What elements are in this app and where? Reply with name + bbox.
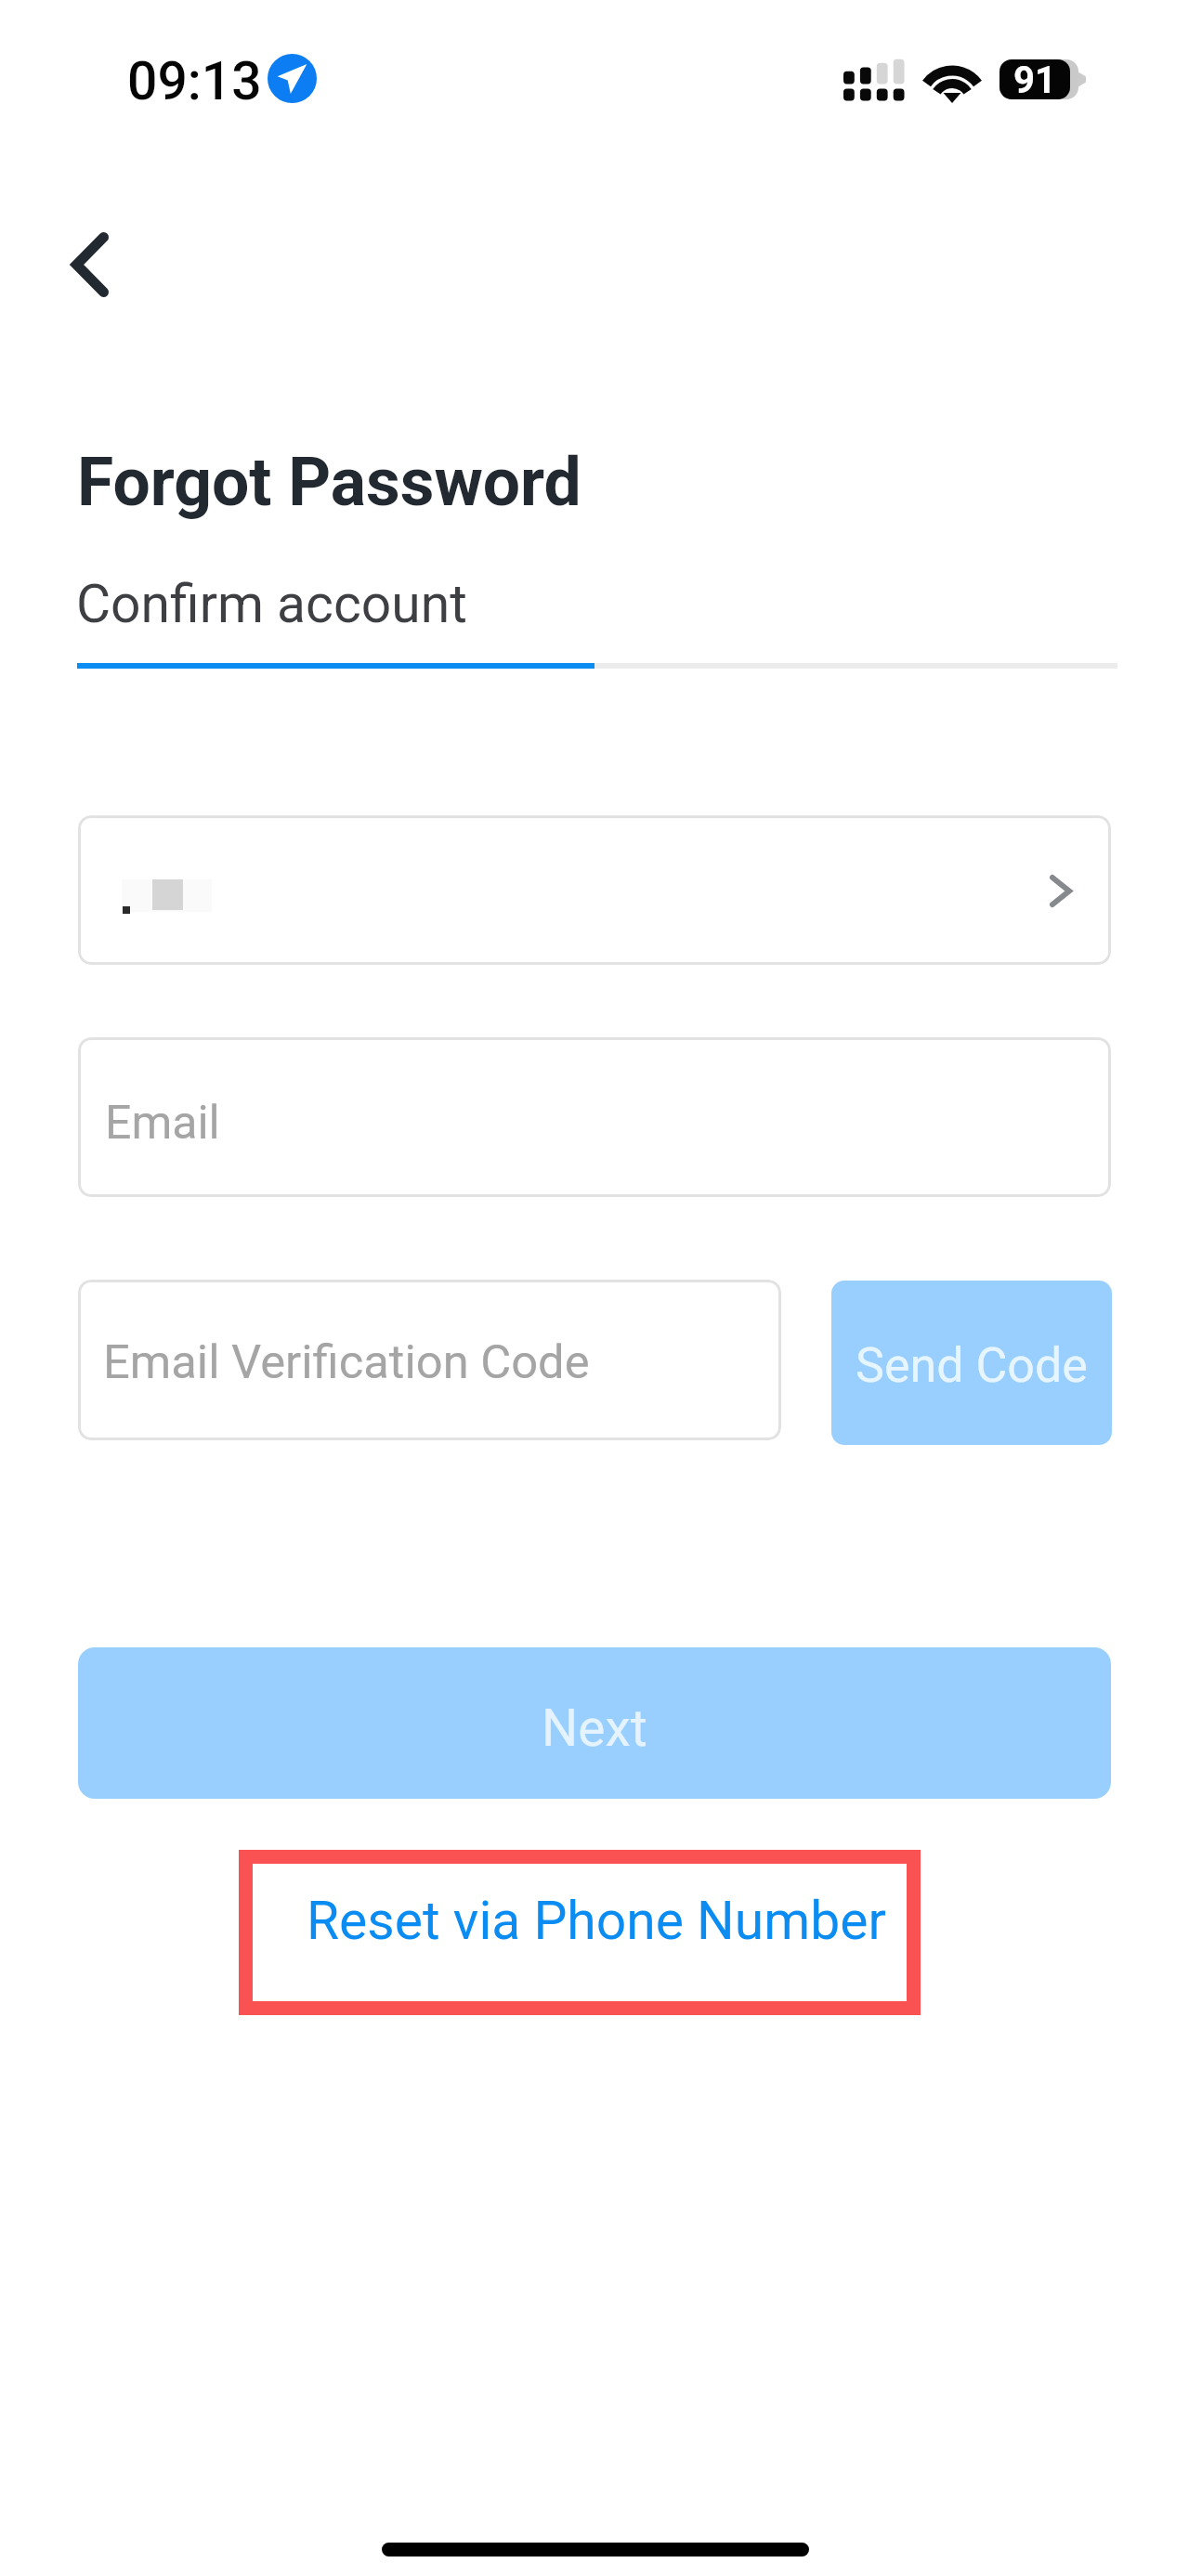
button[interactable]: Select account bbox=[78, 815, 1111, 965]
staticText: Forgot Password bbox=[77, 444, 581, 522]
button[interactable]: Next bbox=[78, 1647, 1111, 1799]
staticText: Reset via Phone Number bbox=[307, 1890, 886, 1952]
button[interactable]: Send Code bbox=[831, 1281, 1112, 1445]
staticText: Next bbox=[542, 1698, 647, 1758]
staticText: Email bbox=[105, 1096, 220, 1151]
button[interactable]: Email bbox=[78, 1037, 1111, 1197]
button[interactable]: Back bbox=[40, 209, 140, 320]
staticText: 91 bbox=[1013, 59, 1056, 98]
staticText: Confirm account bbox=[76, 573, 467, 635]
staticText: 09:13 bbox=[127, 50, 262, 112]
button[interactable]: Email Verification Code bbox=[78, 1280, 781, 1440]
staticText: Email Verification Code bbox=[103, 1334, 590, 1389]
staticText: Send Code bbox=[856, 1337, 1088, 1394]
button[interactable]: Reset via Phone Number bbox=[239, 1850, 921, 2015]
